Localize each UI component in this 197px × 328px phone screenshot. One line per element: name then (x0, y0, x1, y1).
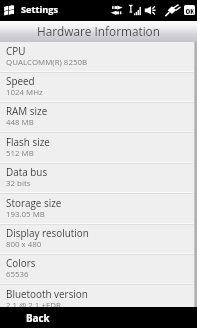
button[interactable]: Data bus (0, 163, 197, 193)
staticText: Hardware Information (37, 23, 160, 39)
staticText: RAM size (6, 104, 48, 117)
staticText: 448 MB (6, 117, 34, 128)
staticText: 2.1 @ 2.1 +EDR (6, 300, 61, 311)
staticText: Storage size (6, 196, 62, 209)
staticText: Speed (6, 74, 35, 87)
button[interactable]: Speed (0, 72, 197, 102)
staticText: Data bus (6, 165, 48, 178)
button[interactable]: Back (0, 307, 99, 328)
button[interactable]: Bluetooth version (0, 285, 197, 315)
button[interactable]: Flash size (0, 133, 197, 163)
staticText: Colors (6, 256, 36, 269)
staticText: QUALCOMM(R) 8250B (6, 57, 88, 68)
staticText: Back (26, 312, 50, 325)
button[interactable]: RAM size (0, 102, 197, 132)
staticText: Settings (21, 3, 59, 16)
staticText: 800 x 480 (6, 239, 42, 250)
button[interactable]: Close (184, 5, 195, 15)
staticText: Display resolution (6, 226, 89, 239)
staticText: OK (185, 5, 193, 15)
button[interactable]: Colors (0, 254, 197, 284)
button[interactable]: Storage size (0, 194, 197, 224)
staticText: Flash size (6, 135, 50, 148)
staticText: Bluetooth version (6, 287, 88, 300)
button[interactable]: CPU (0, 42, 197, 72)
staticText: 1024 MHz (6, 87, 43, 98)
staticText: 32 bits (6, 178, 31, 189)
staticText: 65536 (6, 269, 29, 280)
button[interactable]: Display resolution (0, 224, 197, 254)
staticText: CPU (6, 44, 26, 57)
staticText: 512 MB (6, 148, 34, 159)
staticText: 193.05 MB (6, 209, 45, 220)
